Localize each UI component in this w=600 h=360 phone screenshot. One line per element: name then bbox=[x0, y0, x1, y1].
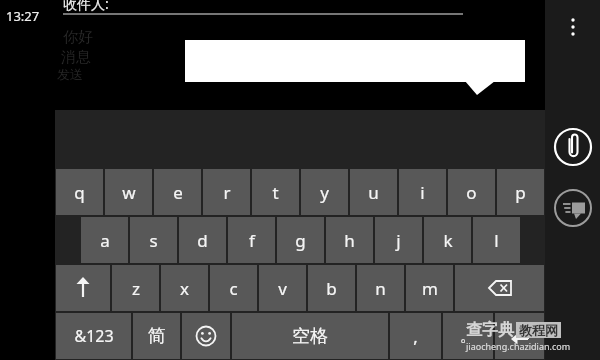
staticText: y bbox=[320, 181, 329, 204]
staticText: z bbox=[132, 277, 140, 300]
button[interactable]: y bbox=[301, 169, 348, 215]
button[interactable]: o bbox=[448, 169, 495, 215]
staticText: m bbox=[422, 277, 438, 300]
button[interactable]: n bbox=[357, 265, 404, 311]
button[interactable]: e bbox=[154, 169, 201, 215]
button[interactable]: Shift bbox=[56, 265, 110, 311]
staticText: n bbox=[375, 277, 386, 300]
staticText: s bbox=[149, 229, 158, 252]
staticText: g bbox=[295, 229, 306, 252]
button[interactable]: 空格 bbox=[232, 313, 388, 359]
staticText: x bbox=[180, 277, 189, 300]
staticText: c bbox=[229, 277, 238, 300]
staticText: q bbox=[74, 181, 85, 204]
button[interactable]: h bbox=[326, 217, 373, 263]
button[interactable]: d bbox=[179, 217, 226, 263]
staticText: p bbox=[515, 181, 526, 204]
staticText: r bbox=[223, 181, 231, 204]
button[interactable]: t bbox=[252, 169, 299, 215]
staticText: w bbox=[122, 181, 136, 204]
button[interactable]: Send message bbox=[553, 188, 593, 228]
staticText: v bbox=[278, 277, 287, 300]
staticText: a bbox=[100, 229, 110, 252]
button[interactable]: m bbox=[406, 265, 453, 311]
button[interactable]: b bbox=[308, 265, 355, 311]
button[interactable]: v bbox=[259, 265, 306, 311]
staticText: 。 bbox=[460, 326, 476, 346]
staticText: , bbox=[413, 325, 418, 348]
button[interactable]: z bbox=[112, 265, 159, 311]
staticText: jiaocheng.chazidian.com bbox=[466, 340, 571, 352]
staticText: f bbox=[249, 229, 255, 252]
button[interactable]: Enter bbox=[495, 313, 544, 359]
button[interactable]: Emoji bbox=[182, 313, 230, 359]
button[interactable]: Backspace bbox=[455, 265, 544, 311]
staticText: j bbox=[396, 229, 401, 252]
staticText: t bbox=[272, 181, 279, 204]
button[interactable]: c bbox=[210, 265, 257, 311]
staticText: o bbox=[466, 181, 477, 204]
button[interactable]: p bbox=[497, 169, 544, 215]
staticText: 收件人: bbox=[63, 0, 109, 13]
staticText: 发送 bbox=[57, 66, 83, 82]
button[interactable]: &123 bbox=[56, 313, 131, 359]
staticText: 空格 bbox=[292, 325, 328, 348]
staticText: i bbox=[420, 181, 425, 204]
staticText: 教程网 bbox=[519, 322, 558, 338]
staticText: &123 bbox=[74, 325, 114, 347]
staticText: l bbox=[494, 229, 499, 252]
button[interactable]: g bbox=[277, 217, 324, 263]
button[interactable]: w bbox=[105, 169, 152, 215]
button[interactable]: q bbox=[56, 169, 103, 215]
button[interactable]: u bbox=[350, 169, 397, 215]
staticText: e bbox=[173, 181, 183, 204]
staticText: 简 bbox=[148, 325, 166, 348]
button[interactable]: f bbox=[228, 217, 275, 263]
staticText: 你好 bbox=[63, 28, 93, 47]
button[interactable]: r bbox=[203, 169, 250, 215]
staticText: b bbox=[326, 277, 337, 300]
button[interactable]: Attach bbox=[553, 127, 593, 167]
button[interactable]: More options bbox=[554, 8, 592, 46]
button[interactable]: 简 bbox=[133, 313, 180, 359]
button[interactable]: a bbox=[81, 217, 128, 263]
staticText: 消息 bbox=[61, 48, 91, 67]
button[interactable]: 。 bbox=[443, 313, 493, 359]
staticText: 13:27 bbox=[6, 7, 40, 25]
button[interactable]: j bbox=[375, 217, 422, 263]
staticText: u bbox=[368, 181, 379, 204]
button[interactable]: s bbox=[130, 217, 177, 263]
staticText: 查字典 bbox=[466, 320, 514, 340]
button[interactable]: , bbox=[390, 313, 441, 359]
staticText: d bbox=[197, 229, 208, 252]
button[interactable]: l bbox=[473, 217, 520, 263]
staticText: k bbox=[443, 229, 453, 252]
button[interactable]: i bbox=[399, 169, 446, 215]
button[interactable]: x bbox=[161, 265, 208, 311]
staticText: h bbox=[344, 229, 355, 252]
button[interactable]: k bbox=[424, 217, 471, 263]
